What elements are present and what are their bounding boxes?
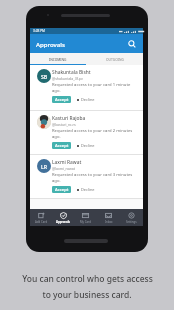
staticText: Add Card bbox=[35, 220, 48, 224]
staticText: Kasturi Rajoba bbox=[52, 115, 86, 122]
staticText: Decline bbox=[81, 187, 95, 192]
staticText: Requested access to your card 2 minutes … bbox=[52, 128, 133, 140]
button[interactable]: Inbox bbox=[97, 209, 120, 226]
staticText: Accept bbox=[55, 187, 69, 193]
staticText: Approvals bbox=[36, 40, 65, 48]
staticText: Laxmi Rawat bbox=[52, 159, 82, 166]
staticText: @kasturi_ro-rs bbox=[52, 122, 76, 127]
staticText: Decline bbox=[81, 143, 95, 148]
staticText: Accept bbox=[55, 143, 69, 149]
button[interactable]: Decline bbox=[77, 186, 95, 193]
staticText: INCOMING bbox=[49, 57, 67, 61]
staticText: to your business card. bbox=[42, 289, 132, 301]
button[interactable]: Search bbox=[124, 36, 140, 52]
staticText: OUTGOING bbox=[106, 57, 124, 61]
staticText: Decline bbox=[81, 97, 95, 102]
staticText: You can control who gets access bbox=[22, 273, 153, 285]
staticText: Inbox bbox=[105, 220, 113, 224]
button[interactable]: Accept bbox=[52, 96, 71, 103]
staticText: LR bbox=[41, 163, 48, 170]
button[interactable]: INCOMING bbox=[30, 53, 86, 65]
staticText: Requested access to your card 3 minutes … bbox=[52, 172, 133, 184]
staticText: My Card bbox=[80, 220, 91, 224]
button[interactable]: Approvals bbox=[52, 209, 74, 226]
button[interactable]: Accept bbox=[52, 186, 71, 193]
staticText: SB bbox=[41, 73, 48, 80]
button[interactable]: LR bbox=[30, 155, 143, 199]
staticText: @laxmi_rawat bbox=[52, 166, 75, 171]
staticText: Settings bbox=[126, 220, 137, 224]
button[interactable]: My Card bbox=[74, 209, 97, 226]
staticText: @shakuntala_3f.pv bbox=[52, 76, 83, 81]
button[interactable]: Decline bbox=[77, 142, 95, 149]
staticText: Accept bbox=[55, 97, 69, 103]
button[interactable]: Kasturi Rajoba bbox=[30, 111, 143, 155]
button[interactable]: OUTGOING bbox=[86, 53, 143, 65]
button[interactable]: Accept bbox=[52, 142, 71, 149]
button[interactable]: SB bbox=[30, 65, 143, 111]
button[interactable]: Add Card bbox=[30, 209, 52, 226]
staticText: Shakuntala Bisht bbox=[52, 69, 91, 76]
staticText: Requested access to your card 1 minute a… bbox=[52, 82, 133, 94]
staticText: 3:28 PM bbox=[33, 29, 45, 33]
button[interactable]: Decline bbox=[77, 96, 95, 103]
button[interactable]: Settings bbox=[120, 209, 143, 226]
staticText: Approvals bbox=[56, 220, 70, 224]
